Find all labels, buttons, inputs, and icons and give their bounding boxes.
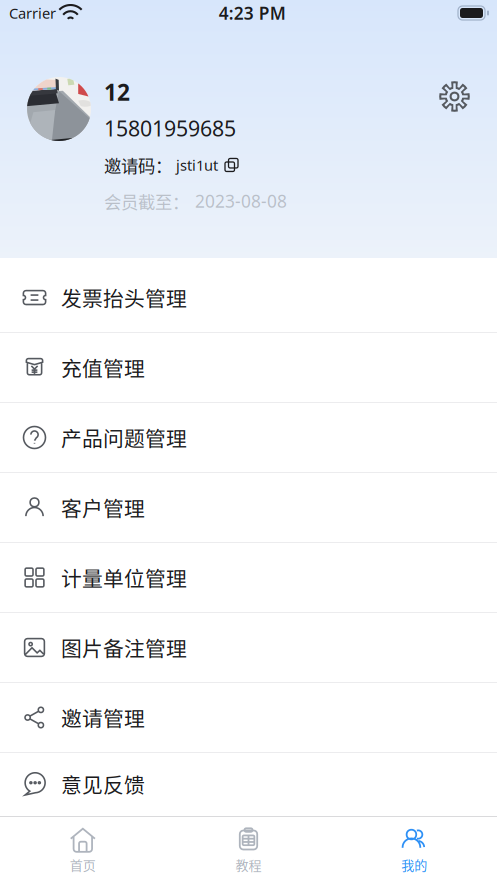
- staticText: 会员截至：: [104, 188, 189, 214]
- staticText: 计量单位管理: [61, 562, 187, 592]
- button[interactable]: 发票抬头管理: [0, 263, 497, 333]
- staticText: Carrier: [9, 3, 56, 23]
- staticText: 产品问题管理: [61, 422, 187, 452]
- staticText: 充值管理: [61, 352, 145, 382]
- staticText: 发票抬头管理: [61, 282, 187, 312]
- button[interactable]: 充值管理: [0, 333, 497, 403]
- staticText: 图片备注管理: [61, 632, 187, 662]
- button[interactable]: 首页: [0, 817, 166, 883]
- staticText: jsti1ut: [176, 155, 218, 175]
- button[interactable]: 产品问题管理: [0, 403, 497, 473]
- staticText: 4:23 PM: [219, 1, 286, 24]
- staticText: 邀请码：: [104, 152, 172, 177]
- button[interactable]: 客户管理: [0, 473, 497, 543]
- staticText: 15801959685: [104, 114, 236, 142]
- staticText: 意见反馈: [61, 769, 145, 799]
- staticText: 客户管理: [61, 492, 145, 522]
- button[interactable]: 教程: [166, 817, 331, 883]
- button[interactable]: 邀请管理: [0, 683, 497, 753]
- button[interactable]: 我的: [331, 817, 497, 883]
- button[interactable]: 设置: [426, 77, 483, 128]
- staticText: 首页: [70, 855, 96, 874]
- button[interactable]: 计量单位管理: [0, 543, 497, 613]
- button[interactable]: 意见反馈: [0, 753, 497, 816]
- staticText: 教程: [235, 855, 261, 874]
- staticText: 12: [104, 77, 130, 107]
- staticText: 我的: [401, 855, 427, 874]
- staticText: 邀请管理: [61, 702, 145, 732]
- button[interactable]: 图片备注管理: [0, 613, 497, 683]
- staticText: 2023-08-08: [195, 190, 287, 213]
